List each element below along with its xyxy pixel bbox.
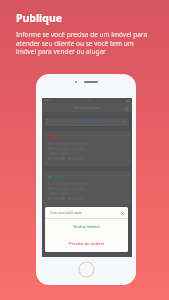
staticText: Rua da Tijuca, Rio de Janeiro Apartament… (48, 181, 92, 201)
staticText: Informe se você precisa de um imóvel par… (16, 30, 155, 56)
button[interactable]: procuro (44, 131, 130, 166)
staticText: Preciso de imóvel (69, 241, 104, 247)
button[interactable]: Filtrar (123, 105, 129, 111)
staticText: 9:41 (87, 99, 93, 103)
button[interactable]: Fechar (119, 210, 125, 216)
staticText: ●●●○○ (44, 99, 55, 102)
staticText: Criar uma publicação (50, 211, 82, 215)
staticText: procuro (54, 134, 68, 139)
staticText: toque para ver suas publicações (71, 124, 105, 127)
staticText: Rua da Tijuca, Rio de Janeiro Apartament… (48, 141, 92, 161)
staticText: + PUBLICAÇÕES ATIVAS (69, 120, 106, 124)
staticText: Tenho imóvel (73, 224, 100, 230)
button[interactable]: Preciso de imóvel (45, 235, 128, 252)
button[interactable]: + PUBLICAÇÕES ATIVAS (44, 117, 130, 127)
staticText: Publique (16, 11, 62, 25)
staticText: tenho (54, 174, 65, 179)
button[interactable]: Tenho imóvel (45, 219, 128, 235)
staticText: Meus Imóveis (74, 105, 100, 110)
